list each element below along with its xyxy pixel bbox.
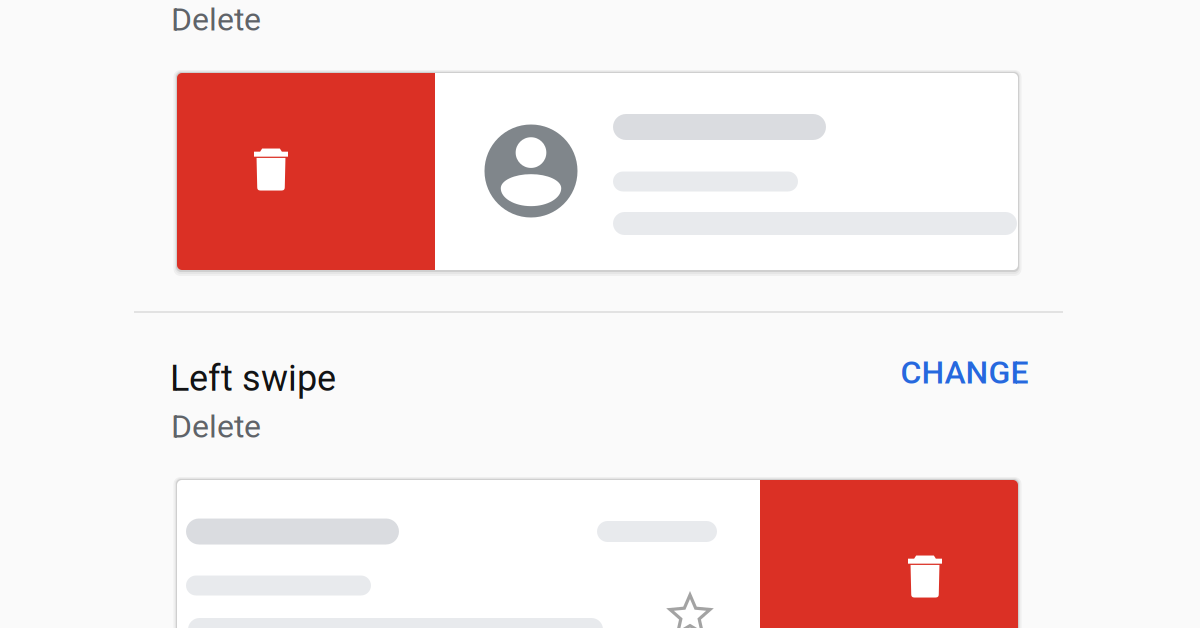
button[interactable]: CHANGE xyxy=(864,344,1029,400)
staticText: Left swipe xyxy=(170,357,336,400)
button[interactable]: Conversation preview xyxy=(435,73,1018,270)
staticText: CHANGE xyxy=(900,354,1028,391)
staticText: Delete xyxy=(171,1,261,38)
button[interactable]: Delete xyxy=(760,480,1018,628)
staticText: Delete xyxy=(171,408,261,445)
button[interactable]: Conversation preview xyxy=(177,480,760,628)
button[interactable]: Delete xyxy=(177,73,435,270)
